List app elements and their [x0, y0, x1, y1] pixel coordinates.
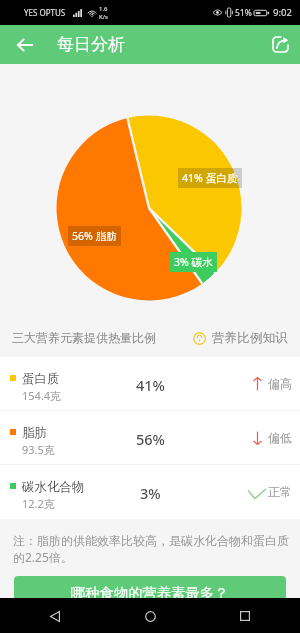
staticText: 每日分析: [57, 34, 125, 55]
staticText: 三大营养元素提供热量比例: [12, 330, 156, 345]
staticText: 偏高: [268, 376, 292, 391]
button[interactable]: 哪种食物的营养素最多？: [14, 576, 286, 610]
staticText: 正常: [268, 484, 292, 499]
button[interactable]: 脂肪: [0, 411, 300, 464]
staticText: 41%: [136, 375, 165, 395]
staticText: 3% 碳水: [174, 255, 213, 269]
staticText: 41% 蛋白质: [182, 171, 238, 185]
button[interactable]: Share: [261, 25, 300, 64]
staticText: 哪种食物的营养素最多？: [71, 584, 229, 602]
staticText: 56% 脂肪: [72, 229, 117, 243]
staticText: 1.6: [99, 5, 108, 13]
staticText: 51%: [235, 7, 252, 19]
staticText: 偏低: [268, 430, 292, 445]
staticText: 12.2克: [22, 496, 55, 511]
staticText: 注：脂肪的供能效率比较高，是碳水化合物和蛋白质的2.25倍。: [13, 533, 294, 565]
staticText: 154.4克: [22, 388, 62, 403]
staticText: 营养比例知识: [212, 330, 288, 346]
button[interactable]: Recent apps: [230, 601, 260, 631]
staticText: 56%: [136, 429, 165, 449]
staticText: 9:02: [273, 6, 292, 19]
staticText: 脂肪: [22, 425, 47, 441]
button[interactable]: 营养比例知识: [193, 330, 288, 346]
button[interactable]: Back: [0, 25, 49, 64]
staticText: 碳水化合物: [22, 479, 85, 495]
staticText: YES OPTUS: [24, 7, 66, 18]
staticText: K/s: [99, 13, 108, 21]
button[interactable]: 蛋白质: [0, 357, 300, 410]
staticText: 蛋白质: [22, 371, 60, 387]
staticText: 93.5克: [22, 442, 55, 457]
button[interactable]: Back: [40, 601, 70, 631]
button[interactable]: 碳水化合物: [0, 465, 300, 518]
staticText: 3%: [140, 483, 161, 503]
button[interactable]: Home: [135, 601, 165, 631]
